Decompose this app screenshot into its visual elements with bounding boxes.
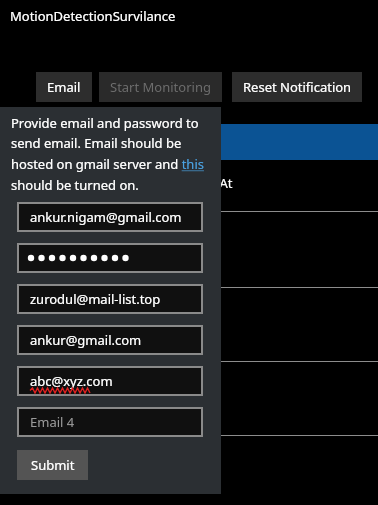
staticText: Email (47, 78, 81, 96)
staticText: MotionDetectionSurvilance (10, 7, 176, 25)
button[interactable]: Email (36, 72, 92, 102)
staticText: Reset Notification (243, 78, 352, 96)
staticText: ankur.nigam@gmail.com (30, 208, 182, 226)
button[interactable]: abc@xyz.com (19, 368, 201, 394)
button[interactable]: ankur@gmail.com (19, 327, 201, 353)
button[interactable]: Submit (17, 450, 88, 480)
staticText: ankur@gmail.com (30, 331, 142, 349)
staticText: abc@xyz.com (30, 372, 113, 390)
staticText: Provide email and password to send email… (11, 114, 204, 194)
button[interactable] (19, 245, 201, 271)
staticText: Start Monitoring (110, 78, 211, 96)
button[interactable] (0, 124, 378, 160)
staticText: zurodul@mail-list.top (30, 290, 161, 308)
button[interactable]: Email 4 (19, 409, 201, 435)
button[interactable]: Reset Notification (232, 72, 362, 102)
staticText: Motion Detection At (110, 174, 233, 192)
button[interactable]: ankur.nigam@gmail.com (19, 204, 201, 230)
button[interactable]: zurodul@mail-list.top (19, 286, 201, 312)
staticText: Email 4 (30, 413, 75, 431)
staticText: Submit (31, 456, 75, 474)
button[interactable]: Start Monitoring (99, 72, 222, 102)
